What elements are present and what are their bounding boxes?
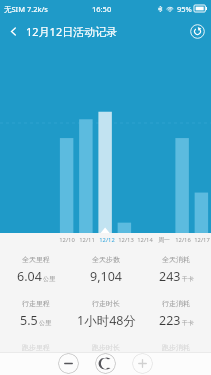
- button[interactable]: 12/12: [97, 233, 116, 246]
- button[interactable]: 跑步里程: [0, 343, 71, 352]
- button[interactable]: 跑步时长: [71, 343, 141, 352]
- button[interactable]: Back: [0, 18, 26, 44]
- button[interactable]: 行走里程: [0, 299, 71, 329]
- staticText: 千卡: [182, 319, 194, 327]
- staticText: 行走消耗: [162, 299, 190, 308]
- staticText: 243: [159, 268, 181, 285]
- staticText: 95%: [177, 4, 192, 14]
- staticText: 12/13: [118, 236, 134, 244]
- button[interactable]: 跑步消耗: [141, 343, 211, 352]
- staticText: 223: [159, 312, 181, 329]
- button[interactable]: 全天消耗: [141, 255, 211, 285]
- staticText: 12月12日活动记录: [26, 24, 118, 39]
- staticText: 12/12: [99, 236, 115, 244]
- staticText: 1小时48分: [77, 312, 136, 329]
- staticText: 12/16: [175, 236, 191, 244]
- button[interactable]: 12/11: [77, 233, 97, 246]
- staticText: 跑步时长: [92, 343, 120, 352]
- staticText: 周一: [158, 236, 170, 243]
- staticText: 全天步数: [92, 255, 120, 264]
- button[interactable]: 全天里程: [0, 255, 71, 285]
- button[interactable]: 12/16: [173, 233, 192, 246]
- staticText: 9,104: [90, 268, 122, 285]
- staticText: 无SIM 7.2k/s: [4, 4, 48, 14]
- staticText: 公里: [43, 275, 55, 283]
- button[interactable]: 12/10: [57, 233, 77, 246]
- staticText: 12/11: [79, 236, 95, 244]
- staticText: 5.5: [20, 312, 38, 329]
- button[interactable]: Decrease: [58, 353, 79, 374]
- staticText: 12/17: [194, 236, 210, 244]
- button[interactable]: 全天步数: [71, 255, 141, 285]
- button[interactable]: 12/13: [116, 233, 135, 246]
- staticText: 行走时长: [92, 299, 120, 308]
- staticText: 12/14: [137, 236, 153, 244]
- button[interactable]: 行走消耗: [141, 299, 211, 329]
- button[interactable]: Refresh: [183, 17, 211, 45]
- button[interactable]: Increase: [132, 353, 153, 374]
- staticText: 全天里程: [22, 255, 50, 264]
- staticText: 跑步消耗: [162, 343, 190, 352]
- staticText: 全天消耗: [162, 255, 190, 264]
- button[interactable]: 12/14: [135, 233, 154, 246]
- staticText: 千卡: [182, 275, 194, 283]
- staticText: 行走里程: [22, 299, 50, 308]
- staticText: 16:50: [92, 4, 112, 14]
- button[interactable]: 行走时长: [71, 299, 141, 329]
- staticText: 6.04: [17, 268, 42, 285]
- button[interactable]: 12/17: [192, 233, 211, 246]
- button[interactable]: Sleep mode: [95, 353, 116, 374]
- staticText: 跑步里程: [22, 343, 50, 352]
- staticText: 12/10: [59, 236, 75, 244]
- staticText: 公里: [39, 319, 51, 327]
- button[interactable]: 周一: [154, 233, 173, 246]
